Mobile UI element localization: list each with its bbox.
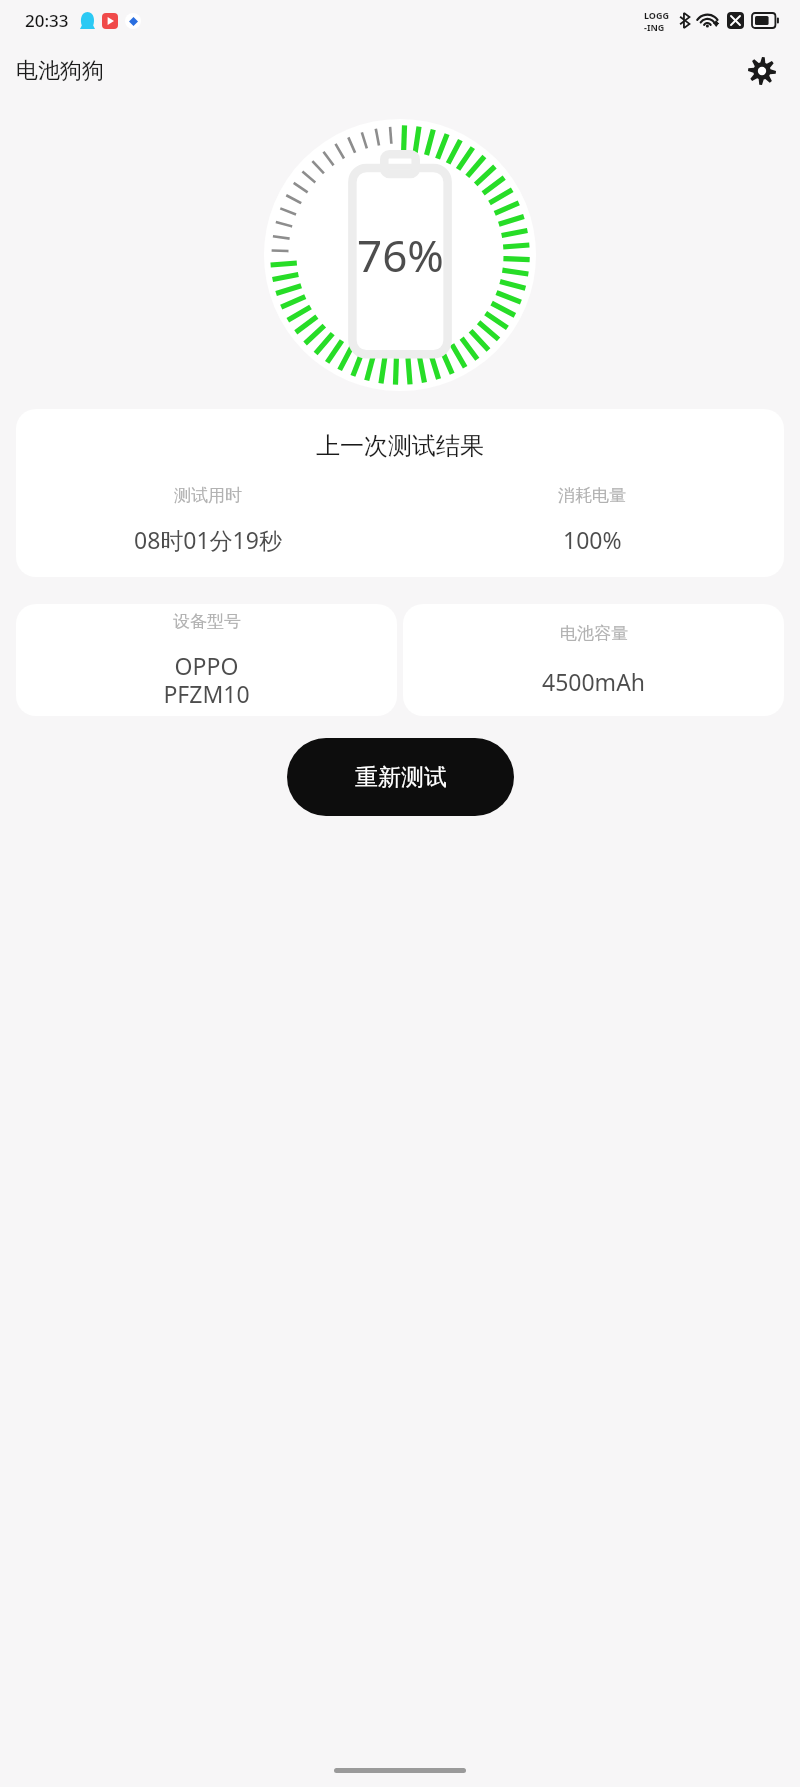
staticText: 消耗电量 xyxy=(558,485,626,506)
staticText: LOGG xyxy=(644,9,670,21)
staticText: 4500mAh xyxy=(542,666,646,697)
button[interactable]: Settings xyxy=(740,49,784,93)
staticText: 测试用时 xyxy=(174,485,242,506)
staticText: -ING xyxy=(644,21,665,33)
staticText: 电池狗狗 xyxy=(16,57,104,85)
staticText: OPPO PFZM10 xyxy=(163,650,250,710)
staticText: 重新测试 xyxy=(355,763,447,792)
staticText: 电池容量 xyxy=(560,623,628,644)
staticText: 08时01分19秒 xyxy=(134,524,282,555)
staticText: 设备型号 xyxy=(173,611,241,632)
button[interactable]: 重新测试 xyxy=(287,738,514,816)
button[interactable]: 电池容量 xyxy=(403,604,784,716)
button[interactable]: 设备型号 xyxy=(16,604,397,716)
button[interactable]: 上一次测试结果 xyxy=(16,409,784,577)
staticText: 上一次测试结果 xyxy=(316,431,484,461)
staticText: 20:33 xyxy=(25,9,69,32)
staticText: 100% xyxy=(563,524,622,555)
staticText: 76% xyxy=(357,225,444,285)
